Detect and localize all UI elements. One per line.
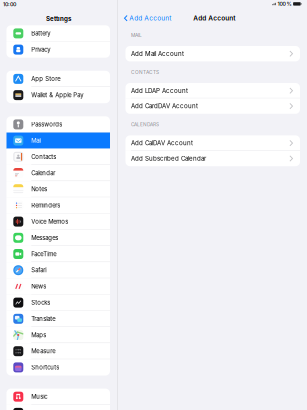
- button[interactable]: FaceTime: [6, 246, 110, 262]
- staticText: Stocks: [31, 299, 50, 306]
- button[interactable]: tv: [6, 405, 110, 410]
- button[interactable]: News: [6, 278, 110, 294]
- button[interactable]: Add CalDAV Account: [125, 135, 300, 151]
- button[interactable]: Calendar: [6, 165, 110, 181]
- button[interactable]: Add Account: [117, 11, 171, 25]
- staticText: CONTACTS: [131, 69, 159, 75]
- button[interactable]: Privacy: [6, 41, 110, 58]
- staticText: Add Subscribed Calendar: [131, 155, 206, 162]
- button[interactable]: Maps: [6, 327, 110, 343]
- staticText: Measure: [31, 348, 55, 355]
- button[interactable]: Messages: [6, 230, 110, 246]
- button[interactable]: Add Mail Account: [125, 46, 300, 61]
- staticText: Battery: [31, 30, 50, 37]
- staticText: Add CalDAV Account: [131, 139, 193, 147]
- staticText: Add Account: [193, 14, 235, 22]
- staticText: 10:00: [3, 1, 16, 8]
- button[interactable]: Stocks: [6, 294, 110, 311]
- staticText: Voice Memos: [31, 218, 68, 225]
- button[interactable]: Add Subscribed Calendar: [125, 151, 300, 166]
- button[interactable]: Measure: [6, 343, 110, 359]
- staticText: Notes: [31, 186, 47, 193]
- button[interactable]: Mail: [6, 132, 110, 149]
- staticText: Add LDAP Account: [131, 87, 188, 94]
- button[interactable]: Contacts: [6, 149, 110, 165]
- staticText: Add Account: [129, 14, 171, 22]
- staticText: Passwords: [31, 121, 62, 128]
- staticText: Messages: [31, 234, 58, 241]
- button[interactable]: Add LDAP Account: [125, 83, 300, 98]
- staticText: Mail: [31, 137, 41, 144]
- staticText: Contacts: [31, 153, 56, 160]
- button[interactable]: Reminders: [6, 197, 110, 213]
- staticText: FaceTime: [31, 250, 56, 258]
- button[interactable]: Voice Memos: [6, 213, 110, 230]
- staticText: Shortcuts: [31, 364, 59, 371]
- staticText: Translate: [31, 315, 55, 322]
- staticText: Settings: [46, 15, 71, 22]
- staticText: Calendar: [31, 169, 55, 177]
- staticText: Wallet & Apple Pay: [31, 91, 83, 99]
- button[interactable]: Safari: [6, 262, 110, 278]
- staticText: CALENDARS: [131, 122, 159, 127]
- staticText: App Store: [31, 75, 60, 82]
- staticText: News: [31, 283, 46, 290]
- button[interactable]: Wallet & Apple Pay: [6, 87, 110, 103]
- staticText: Reminders: [31, 202, 60, 209]
- staticText: Music: [31, 393, 47, 400]
- staticText: Maps: [31, 331, 46, 339]
- button[interactable]: Battery: [6, 25, 110, 41]
- button[interactable]: Translate: [6, 311, 110, 327]
- button[interactable]: Add CardDAV Account: [125, 98, 300, 114]
- staticText: 100 %: [277, 1, 291, 7]
- button[interactable]: Music: [6, 389, 110, 405]
- button[interactable]: Passwords: [6, 116, 110, 132]
- staticText: Safari: [31, 267, 46, 274]
- staticText: Add Mail Account: [131, 50, 184, 57]
- staticText: Privacy: [31, 46, 50, 53]
- staticText: Add CardDAV Account: [131, 102, 198, 110]
- staticText: MAIL: [131, 32, 142, 38]
- button[interactable]: App Store: [6, 71, 110, 87]
- button[interactable]: Shortcuts: [6, 359, 110, 375]
- button[interactable]: Notes: [6, 181, 110, 197]
